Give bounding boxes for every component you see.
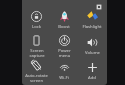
button[interactable]: Auto-rotate screen	[23, 59, 50, 83]
button[interactable]: Screen capture	[23, 34, 50, 58]
staticText: Add	[88, 75, 96, 81]
staticText: Lock	[32, 24, 41, 30]
staticText: Volume	[85, 50, 100, 56]
button[interactable]: Lock	[23, 8, 50, 33]
button[interactable]: Flashlight	[78, 8, 106, 33]
staticText: Wi-Fi	[59, 75, 69, 81]
button[interactable]: Power menu	[50, 34, 78, 58]
staticText: Power menu	[58, 48, 71, 58]
button[interactable]: Volume	[78, 34, 106, 58]
button[interactable]: Add	[78, 59, 106, 83]
staticText: Auto-rotate screen	[25, 73, 48, 83]
staticText: Boost	[58, 24, 70, 30]
staticText: Flashlight	[82, 24, 102, 30]
button[interactable]: Wi-Fi	[50, 59, 78, 83]
button[interactable]: Settings	[94, 2, 103, 11]
staticText: Screen capture	[29, 48, 45, 58]
button[interactable]: Boost	[50, 8, 78, 33]
